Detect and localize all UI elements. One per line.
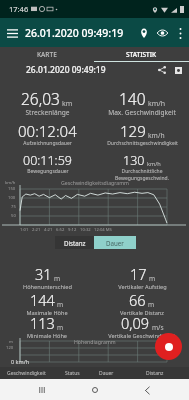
staticText: Streckenlänge [25, 108, 70, 117]
staticText: 50 [11, 213, 16, 219]
staticText: 26.01.2020 09:49:19 [25, 26, 124, 40]
button[interactable]: Start recording [155, 333, 182, 360]
staticText: Bewegungsdauer [27, 168, 69, 175]
staticText: 10:32 [80, 227, 91, 233]
button[interactable]: Back [137, 380, 157, 400]
staticText: 140 [119, 88, 146, 109]
staticText: m [57, 300, 64, 309]
staticText: Höhendiagramm [74, 338, 116, 345]
button[interactable]: Home [85, 380, 105, 400]
staticText: 100 [8, 195, 16, 201]
staticText: Durchschnittsgeschwindigkeit [107, 140, 178, 147]
button[interactable]: Toggle visibility [153, 23, 172, 42]
staticText: m [9, 339, 13, 345]
staticText: m/s [152, 323, 164, 332]
staticText: Vertikaler Aufstieg [118, 283, 167, 291]
button[interactable]: Share [154, 62, 170, 78]
staticText: km [62, 99, 73, 108]
button[interactable]: Show on map [134, 23, 153, 42]
staticText: km/h [5, 180, 16, 186]
staticText: 00:11:59 [23, 152, 72, 169]
staticText: km/h [148, 99, 166, 108]
staticText: 150 [8, 186, 16, 192]
button[interactable]: Distanz [120, 367, 189, 379]
staticText: STATISTIK [126, 50, 157, 59]
staticText: KARTE [37, 50, 57, 59]
staticText: Geschwindigkeitsdiagramm [61, 179, 129, 186]
staticText: 9:12 [68, 227, 77, 233]
staticText: 113 [30, 313, 55, 333]
staticText: m [148, 300, 155, 309]
staticText: Distanz [64, 239, 86, 247]
staticText: 17 [130, 264, 147, 284]
staticText: Durchschnittliche Bewegungsgeschwind. [96, 168, 188, 182]
staticText: Maximale Höhe [26, 309, 68, 317]
staticText: 6:52 [56, 227, 65, 233]
button[interactable]: Open navigation drawer [2, 23, 22, 43]
button[interactable]: KARTE [0, 47, 94, 62]
staticText: Distanz [146, 370, 164, 377]
staticText: 120 [6, 345, 14, 351]
staticText: 0 km/h [11, 358, 30, 365]
staticText: 12:04 MS [94, 227, 112, 233]
staticText: 00:12:04 [18, 121, 77, 141]
staticText: Höhenunterschied [23, 283, 72, 291]
button[interactable]: Geschwindigkeit [0, 367, 52, 379]
staticText: 26.01.2020 09:49:19 [26, 64, 106, 76]
staticText: 130 [123, 152, 145, 169]
button[interactable]: Dauer [94, 236, 136, 249]
staticText: 26,03 [21, 88, 60, 109]
staticText: Vertikale Geschwindigkeit [108, 332, 176, 340]
staticText: Vertikale Distanz [120, 309, 164, 317]
staticText: 17:46 [9, 4, 29, 14]
staticText: Status [65, 370, 80, 377]
staticText: Aufzeichnungsdauer [23, 140, 72, 147]
staticText: 31 [35, 264, 52, 284]
staticText: Geschwindigkeit [7, 370, 46, 377]
staticText: m [149, 274, 156, 283]
staticText: km/h [147, 160, 161, 168]
staticText: Dauer [99, 370, 114, 377]
staticText: 75 [11, 204, 16, 210]
staticText: m [54, 274, 61, 283]
button[interactable]: Save [170, 62, 186, 78]
staticText: 66 [129, 290, 146, 310]
button[interactable]: More options [172, 25, 188, 41]
staticText: 144 [30, 290, 55, 310]
staticText: Dauer [106, 239, 124, 247]
staticText: m [57, 323, 64, 332]
staticText: 2:21 [32, 227, 41, 233]
button[interactable]: Dauer [93, 367, 120, 379]
button[interactable]: Distanz [55, 236, 94, 249]
staticText: 1:01 [20, 227, 29, 233]
staticText: 0,09 [121, 313, 150, 333]
staticText: 129 [120, 121, 146, 141]
button[interactable]: Recent apps [32, 380, 52, 400]
button[interactable]: STATISTIK [94, 47, 189, 62]
button[interactable]: Status [52, 367, 93, 379]
staticText: 4:21 [44, 227, 53, 233]
staticText: km/h [148, 131, 165, 140]
staticText: Minimale Höhe [27, 332, 67, 340]
staticText: Max. Geschwindigkeit [108, 108, 176, 117]
